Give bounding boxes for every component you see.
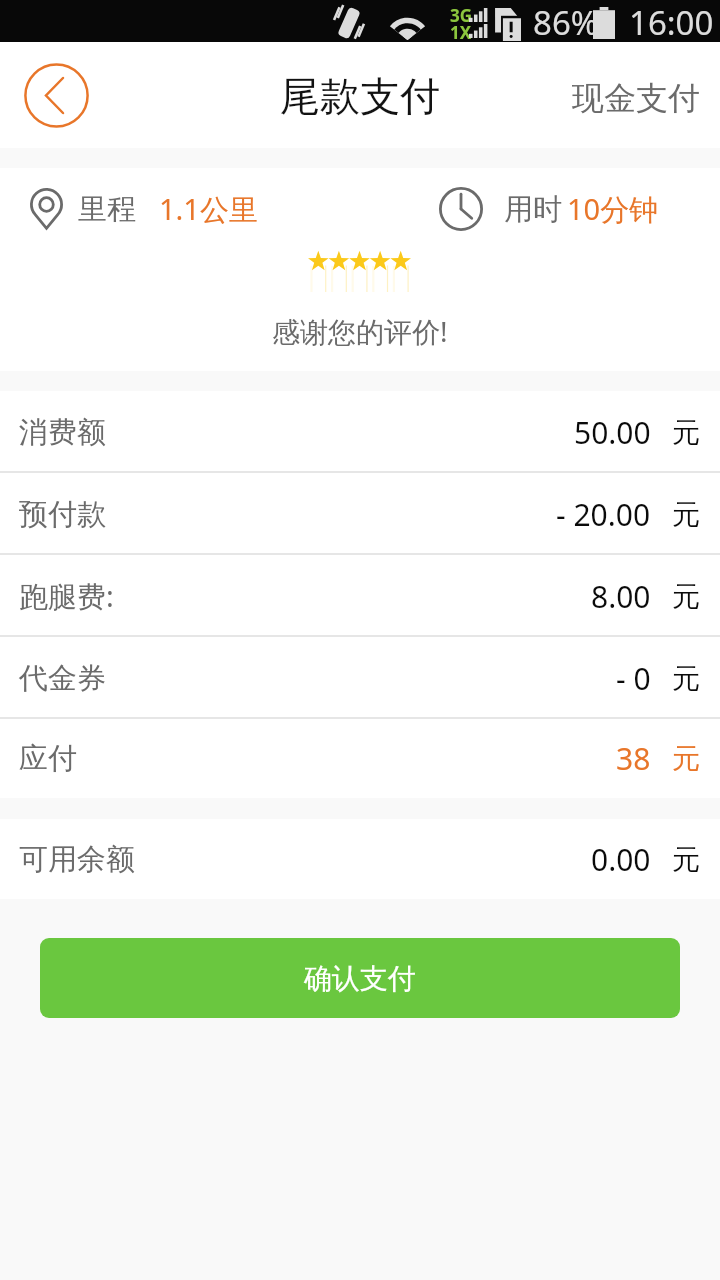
- staticText: 50.00: [574, 412, 651, 453]
- staticText: 用时: [504, 191, 562, 228]
- button[interactable]: 5 star rating: [308, 250, 411, 292]
- button[interactable]: 消费额: [0, 391, 720, 473]
- button[interactable]: 确认支付: [40, 938, 680, 1018]
- staticText: 38: [616, 738, 651, 779]
- staticText: 1.1公里: [159, 189, 258, 229]
- staticText: 现金支付: [572, 78, 700, 118]
- button[interactable]: 代金券: [0, 637, 720, 719]
- staticText: - 0: [616, 658, 651, 699]
- staticText: 预付款: [19, 496, 106, 533]
- staticText: 3G: [450, 4, 473, 27]
- staticText: 感谢您的评价!: [272, 312, 448, 350]
- staticText: 元: [672, 579, 700, 614]
- button[interactable]: 跑腿费:: [0, 555, 720, 637]
- button[interactable]: 现金支付: [542, 57, 720, 133]
- staticText: 10分钟: [567, 189, 659, 229]
- staticText: 1X: [450, 21, 472, 44]
- staticText: 应付: [19, 740, 77, 777]
- button[interactable]: 应付: [0, 719, 720, 798]
- button[interactable]: Back: [24, 63, 89, 128]
- staticText: 跑腿费:: [19, 576, 114, 616]
- staticText: 元: [672, 497, 700, 532]
- staticText: 代金券: [19, 660, 106, 697]
- staticText: 元: [672, 415, 700, 450]
- staticText: 元: [672, 661, 700, 696]
- staticText: 确认支付: [304, 961, 416, 996]
- staticText: 元: [672, 842, 700, 877]
- staticText: 86%: [533, 0, 599, 42]
- button[interactable]: 预付款: [0, 473, 720, 555]
- staticText: 0.00: [591, 839, 651, 880]
- staticText: 消费额: [19, 414, 106, 451]
- staticText: 里程: [78, 191, 136, 228]
- staticText: 16:00: [629, 0, 714, 42]
- button[interactable]: 可用余额: [0, 819, 720, 899]
- staticText: 元: [672, 741, 700, 776]
- staticText: 尾款支付: [280, 71, 440, 121]
- staticText: 可用余额: [19, 841, 135, 878]
- staticText: - 20.00: [556, 494, 651, 535]
- staticText: 8.00: [591, 576, 651, 617]
